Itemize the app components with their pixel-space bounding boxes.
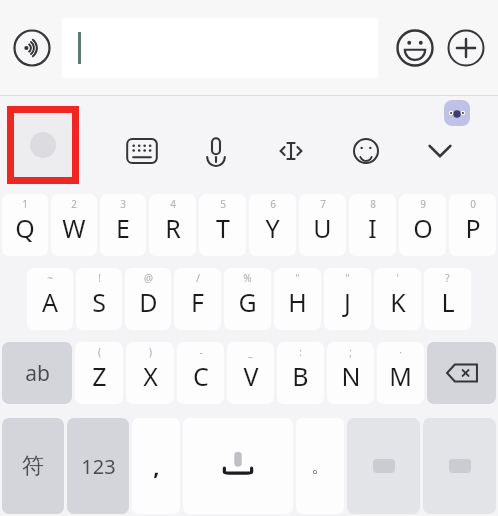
button[interactable]: ) bbox=[126, 342, 174, 404]
button[interactable]: Voice input bbox=[193, 128, 239, 174]
button[interactable]: / bbox=[174, 268, 221, 330]
staticText: L bbox=[441, 285, 455, 319]
button[interactable]: 1 bbox=[2, 194, 48, 256]
staticText: H bbox=[288, 285, 307, 319]
staticText: - bbox=[199, 345, 203, 359]
staticText: ab bbox=[25, 359, 50, 388]
button[interactable]: 2 bbox=[51, 194, 97, 256]
staticText: S bbox=[92, 285, 106, 319]
staticText: 8 bbox=[370, 197, 376, 211]
staticText: B bbox=[292, 359, 309, 393]
button[interactable]: · bbox=[377, 342, 424, 404]
staticText: M bbox=[389, 359, 412, 393]
button[interactable]: 123 bbox=[67, 418, 129, 514]
staticText: C bbox=[193, 359, 209, 393]
button[interactable]: 5 bbox=[199, 194, 246, 256]
button[interactable]: Emoji bbox=[394, 27, 436, 69]
staticText: E bbox=[116, 211, 130, 245]
staticText: F bbox=[191, 285, 204, 319]
staticText: / bbox=[196, 271, 200, 285]
button[interactable]: Account avatar bbox=[444, 100, 470, 126]
button[interactable]: 0 bbox=[449, 194, 496, 256]
button[interactable]: Selected key bbox=[14, 113, 72, 177]
button[interactable]: Hide keyboard bbox=[417, 128, 463, 174]
button[interactable]: 3 bbox=[100, 194, 146, 256]
button[interactable]: 8 bbox=[349, 194, 396, 256]
staticText: @ bbox=[144, 271, 153, 285]
button[interactable]: Backspace bbox=[427, 342, 496, 404]
staticText: I bbox=[368, 211, 377, 245]
button[interactable]: 9 bbox=[399, 194, 446, 256]
button[interactable]: ( bbox=[75, 342, 123, 404]
staticText: T bbox=[216, 211, 230, 245]
staticText: O bbox=[413, 211, 433, 245]
staticText: · bbox=[399, 345, 402, 359]
button[interactable]: Voice broadcast bbox=[11, 27, 53, 69]
button[interactable]: : bbox=[277, 342, 324, 404]
staticText: 7 bbox=[320, 197, 326, 211]
staticText: A bbox=[42, 285, 58, 319]
button[interactable]: Add bbox=[444, 26, 488, 70]
staticText: ? bbox=[445, 271, 450, 285]
button[interactable]: ! bbox=[76, 268, 122, 330]
staticText: ( bbox=[98, 345, 101, 359]
button[interactable]: 符 bbox=[2, 418, 64, 514]
staticText: P bbox=[465, 211, 481, 245]
button[interactable]: ' bbox=[374, 268, 421, 330]
staticText: V bbox=[243, 359, 259, 393]
button[interactable]: - bbox=[177, 342, 224, 404]
staticText: R bbox=[165, 211, 181, 245]
staticText: 符 bbox=[22, 452, 44, 480]
staticText: 3 bbox=[120, 197, 126, 211]
staticText: " bbox=[345, 271, 350, 285]
staticText: ; bbox=[349, 345, 352, 359]
staticText: U bbox=[313, 211, 332, 245]
button[interactable]: ? bbox=[424, 268, 471, 330]
staticText: 2 bbox=[71, 197, 77, 211]
button[interactable]: _ bbox=[227, 342, 274, 404]
button[interactable]: Stickers bbox=[343, 128, 389, 174]
button[interactable]: Keyboard layout bbox=[119, 128, 165, 174]
button[interactable]: % bbox=[224, 268, 271, 330]
button[interactable]: 6 bbox=[249, 194, 296, 256]
staticText: 5 bbox=[220, 197, 226, 211]
staticText: W bbox=[62, 211, 86, 245]
staticText: ) bbox=[149, 345, 152, 359]
button[interactable]: @ bbox=[125, 268, 171, 330]
button[interactable] bbox=[62, 18, 378, 78]
staticText: " bbox=[295, 271, 300, 285]
staticText: Y bbox=[265, 211, 280, 245]
staticText: X bbox=[143, 359, 158, 393]
button[interactable]: Move cursor bbox=[268, 128, 314, 174]
staticText: 6 bbox=[270, 197, 276, 211]
staticText: J bbox=[344, 285, 351, 319]
button[interactable]: " bbox=[274, 268, 321, 330]
button[interactable]: Space bbox=[183, 418, 293, 514]
staticText: G bbox=[238, 285, 257, 319]
staticText: 0 bbox=[470, 197, 476, 211]
staticText: Q bbox=[15, 211, 35, 245]
staticText: D bbox=[139, 285, 158, 319]
staticText: ! bbox=[98, 271, 101, 285]
staticText: , bbox=[153, 451, 160, 481]
button[interactable]: 4 bbox=[149, 194, 196, 256]
staticText: 123 bbox=[81, 453, 116, 480]
button[interactable]: 。 bbox=[296, 418, 344, 514]
staticText: ' bbox=[396, 271, 399, 285]
button[interactable]: , bbox=[132, 418, 180, 514]
staticText: ~ bbox=[47, 271, 53, 285]
staticText: 9 bbox=[420, 197, 426, 211]
staticText: N bbox=[341, 359, 361, 393]
staticText: 1 bbox=[22, 197, 28, 211]
staticText: % bbox=[243, 271, 252, 285]
button[interactable]: Key bbox=[347, 418, 420, 514]
button[interactable]: 7 bbox=[299, 194, 346, 256]
staticText: 4 bbox=[170, 197, 176, 211]
staticText: Z bbox=[92, 359, 107, 393]
staticText: 。 bbox=[311, 455, 329, 478]
button[interactable]: ; bbox=[327, 342, 374, 404]
button[interactable]: ~ bbox=[27, 268, 73, 330]
button[interactable]: Enter bbox=[423, 418, 496, 514]
button[interactable]: ab bbox=[2, 342, 72, 404]
button[interactable]: " bbox=[324, 268, 371, 330]
